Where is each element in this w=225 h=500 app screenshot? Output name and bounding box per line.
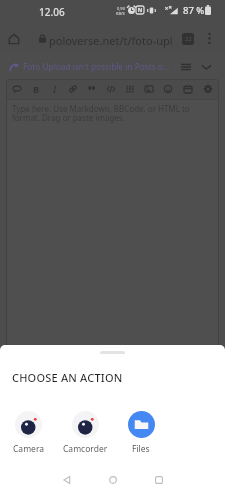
button[interactable]: Camera xyxy=(0,411,56,455)
staticText: 0,90 xyxy=(117,6,125,11)
button[interactable]: Back xyxy=(51,464,83,496)
button[interactable]: Settings xyxy=(200,81,216,97)
staticText: Files xyxy=(132,443,150,455)
button[interactable]: Tabs xyxy=(178,29,197,48)
staticText: KB/S xyxy=(116,11,125,16)
button[interactable]: Emoji xyxy=(160,81,176,97)
button[interactable]: More options xyxy=(200,29,219,48)
button[interactable]: Quote xyxy=(84,81,100,97)
staticText: CHOOSE AN ACTION xyxy=(12,370,123,385)
button[interactable]: Calendar xyxy=(180,81,196,97)
button[interactable]: Image xyxy=(141,81,157,97)
staticText: 87 % xyxy=(183,4,205,17)
staticText: B xyxy=(33,83,39,95)
staticText: Type here. Use Markdown, BBCode, or HTML… xyxy=(12,103,190,114)
staticText: 22 xyxy=(185,35,192,43)
button[interactable]: Table xyxy=(122,81,138,97)
button[interactable]: Files xyxy=(113,411,169,455)
button[interactable]: Home xyxy=(4,29,23,48)
staticText: poloverse.net/t/foto-upl xyxy=(49,33,173,48)
button[interactable]: Home xyxy=(97,464,129,496)
staticText: 12.06 xyxy=(39,5,65,19)
staticText: I xyxy=(53,83,57,96)
button[interactable]: Comment xyxy=(9,81,25,97)
button[interactable]: Italic xyxy=(47,81,63,97)
button[interactable]: Link xyxy=(65,81,81,97)
staticText: Camera xyxy=(13,443,44,455)
button[interactable]: Camcorder xyxy=(57,411,113,455)
button[interactable]: Code xyxy=(103,81,119,97)
staticText: Foto Upload isn't possible in Posts o… xyxy=(23,61,170,72)
staticText: Camcorder xyxy=(63,443,108,455)
button[interactable]: Bold xyxy=(28,81,44,97)
staticText: format. Drag or paste images. xyxy=(12,112,125,123)
button[interactable]: Recents xyxy=(143,464,175,496)
